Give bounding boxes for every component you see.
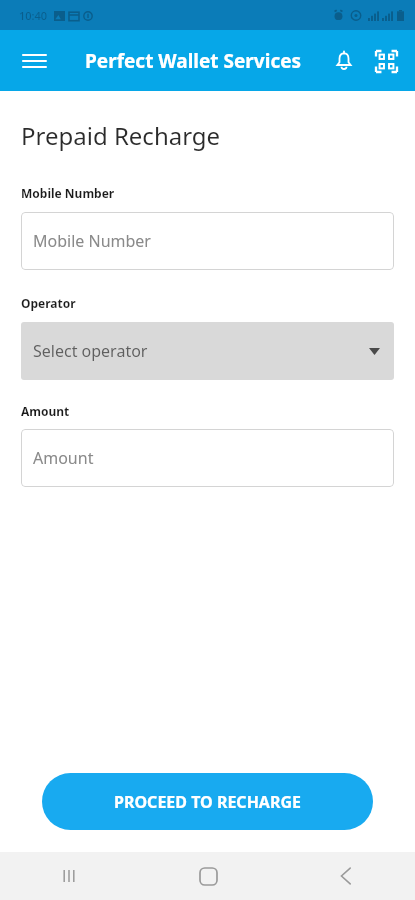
staticText: Prepaid Recharge [21,119,221,152]
button[interactable]: Home [178,852,238,900]
staticText: Amount [33,447,94,469]
button[interactable]: Back [316,852,376,900]
staticText: Operator [21,295,76,311]
staticText: PROCEED TO RECHARGE [114,791,301,813]
staticText: Perfect Wallet Services [85,48,302,74]
button[interactable]: Open navigation menu [10,37,58,85]
button[interactable]: Mobile Number [21,212,394,270]
button[interactable]: Amount [21,429,394,487]
staticText: Mobile Number [21,185,115,201]
staticText: Mobile Number [33,230,151,252]
button[interactable]: Recent apps [39,852,99,900]
staticText: Select operator [33,340,148,362]
button[interactable]: Select operator [21,322,394,380]
staticText: Amount [21,403,70,419]
button[interactable]: PROCEED TO RECHARGE [42,773,373,830]
staticText: 10:40 [19,8,48,23]
button[interactable]: Scan QR code [365,40,407,82]
button[interactable]: Notifications [323,40,365,82]
